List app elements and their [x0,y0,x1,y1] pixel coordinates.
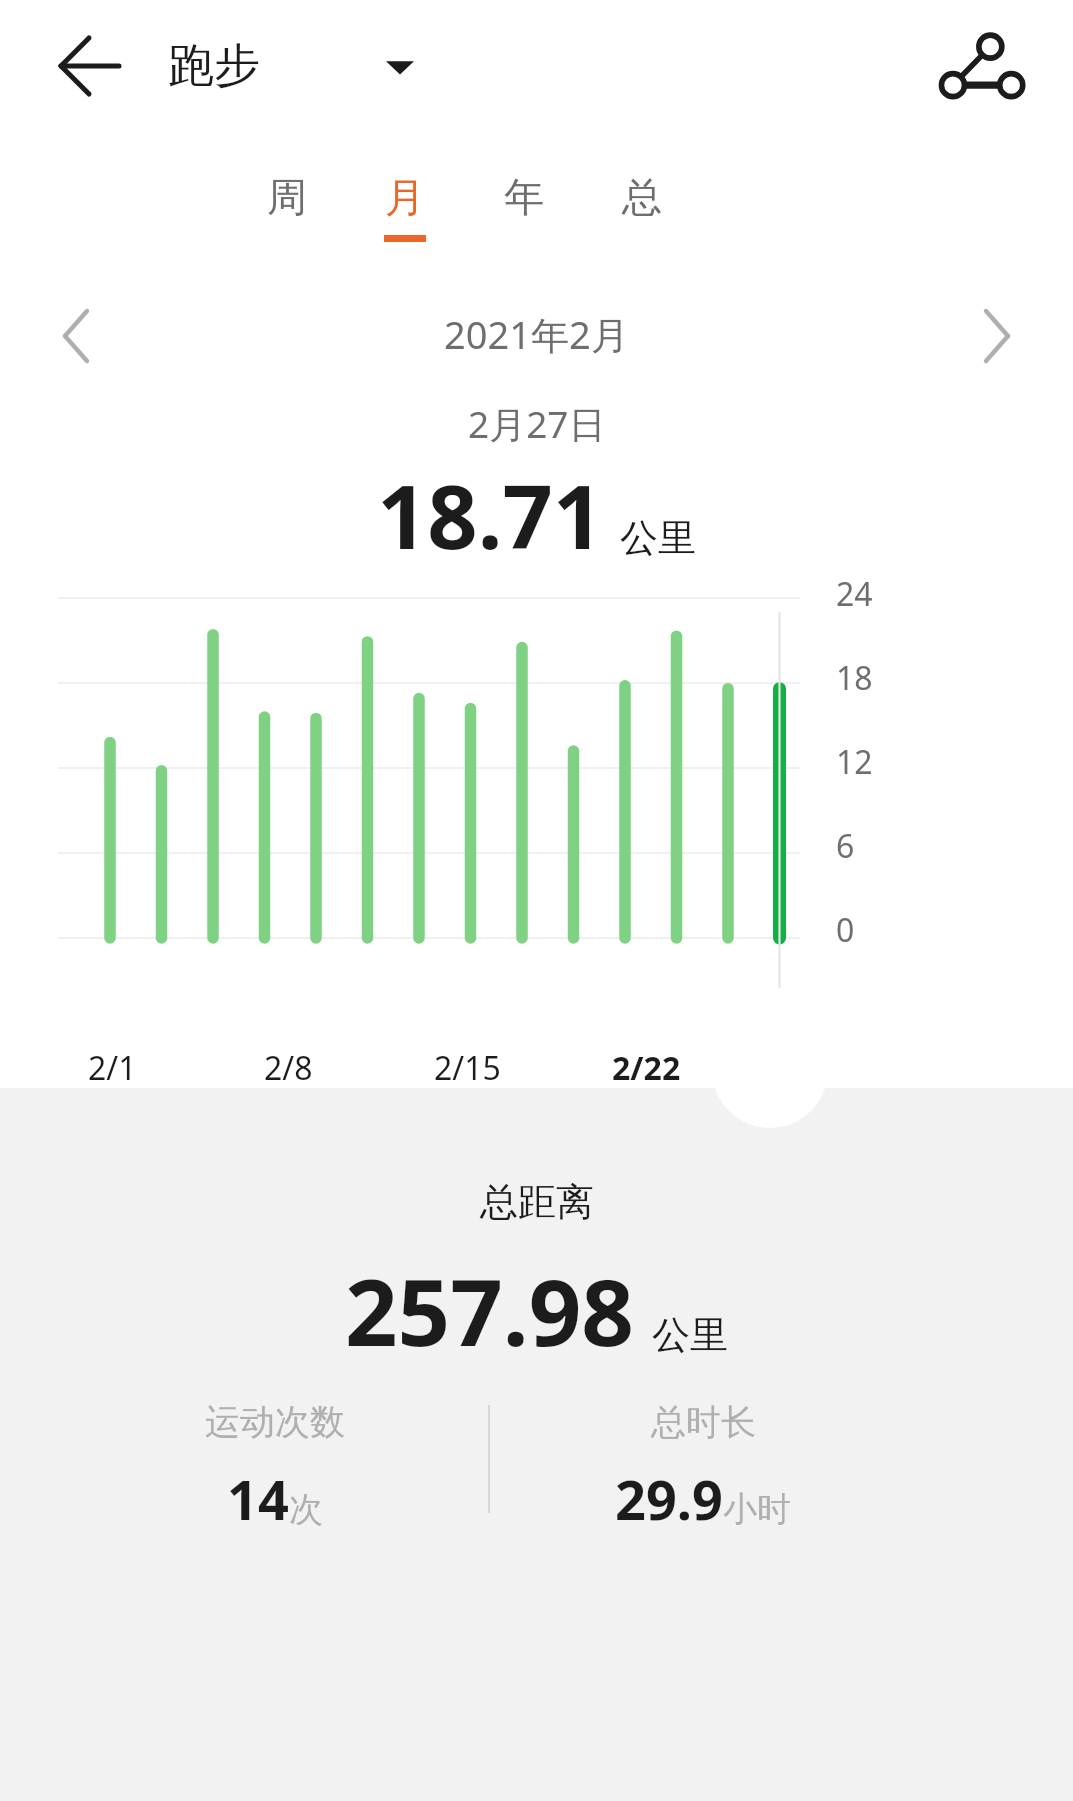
staticText: 6 [836,824,855,868]
staticText: 公里 [652,1311,728,1359]
staticText: 29.9 [615,1462,723,1536]
button[interactable]: 月 [357,172,453,272]
staticText: 0 [836,908,855,952]
staticText: 总时长 [651,1400,756,1444]
staticText: 小时 [723,1488,791,1531]
staticText: 月 [385,172,425,222]
button[interactable]: Share [926,12,1036,122]
button[interactable]: 年 [476,172,572,272]
staticText: 次 [289,1488,323,1531]
staticText: 2/15 [434,1046,501,1090]
staticText: 公里 [620,514,696,562]
staticText: 2月27日 [468,398,606,449]
button[interactable]: 总 [594,172,690,272]
staticText: 2021年2月 [444,308,629,360]
staticText: 周 [267,172,307,222]
staticText: 18 [836,656,873,700]
staticText: 年 [504,172,544,222]
button[interactable]: 跑步 [168,17,414,115]
staticText: 跑步 [168,37,260,95]
button[interactable]: 总时长 [588,1400,818,1536]
staticText: 14 [227,1462,289,1536]
staticText: 257.98 [345,1248,634,1373]
staticText: 总 [622,172,662,222]
staticText: 24 [836,572,873,616]
staticText: 2/1 [88,1046,137,1090]
button[interactable]: Back [42,20,134,112]
staticText: 2/8 [264,1046,313,1090]
button[interactable]: Previous month [30,290,122,382]
button[interactable]: 周 [239,172,335,272]
staticText: 2/22 [612,1046,681,1090]
staticText: 运动次数 [205,1400,345,1444]
staticText: 12 [836,740,873,784]
staticText: 总距离 [480,1178,594,1226]
staticText: 18.71 [377,455,604,575]
button[interactable]: Next month [951,290,1043,382]
button[interactable]: 运动次数 [160,1400,390,1536]
